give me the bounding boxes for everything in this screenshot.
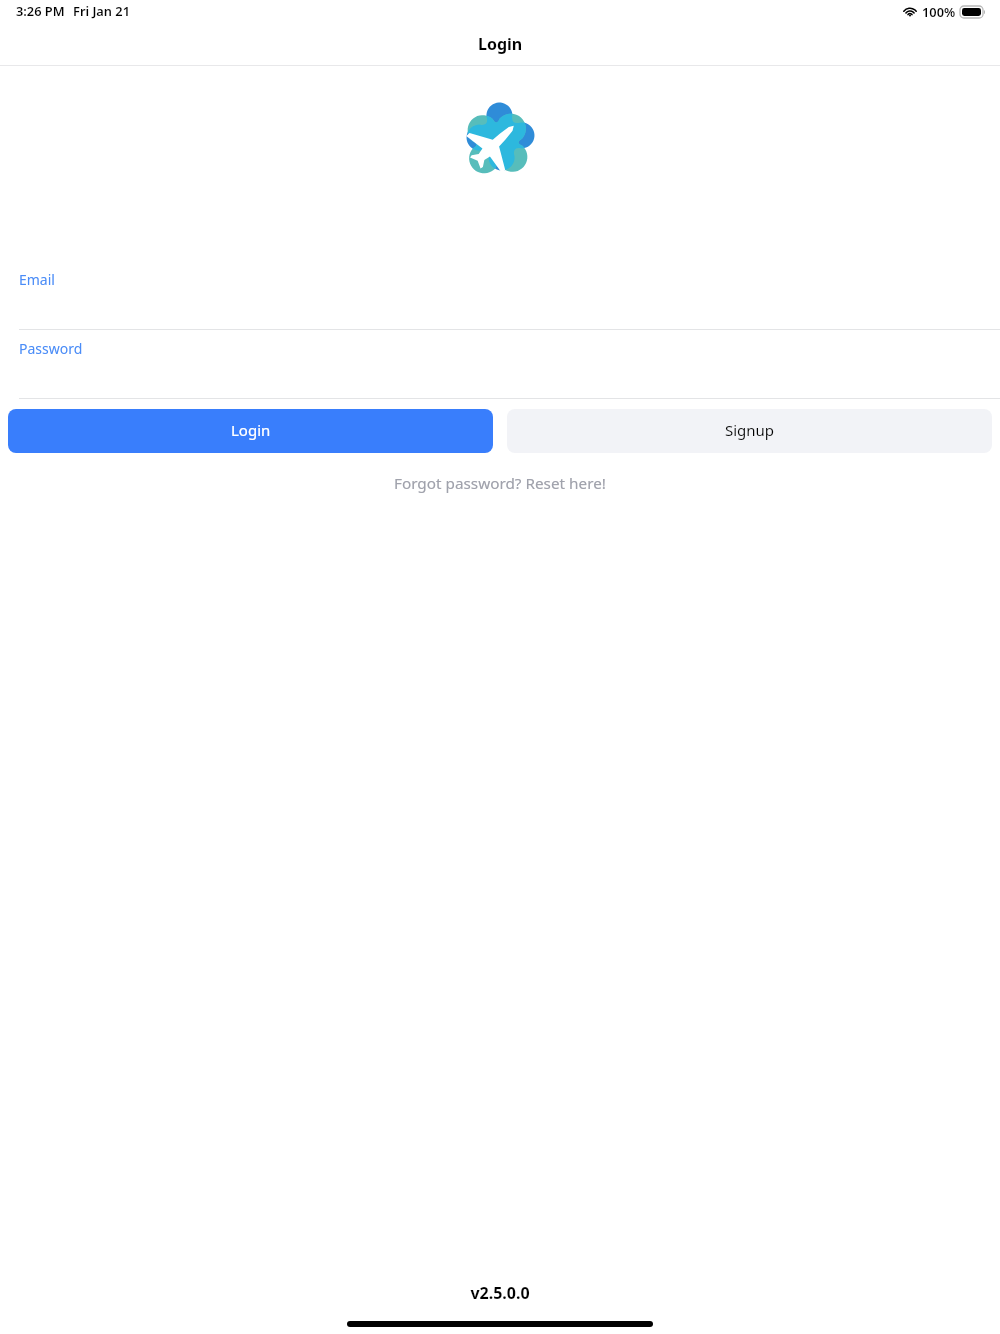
staticText: Fri Jan 21 (73, 2, 130, 19)
other: Wi-Fi connected (903, 6, 917, 17)
staticText: 3:26 PM (16, 2, 65, 19)
button[interactable]: Signup (507, 409, 992, 453)
other: Battery full (960, 6, 985, 18)
staticText: Signup (725, 420, 775, 440)
button[interactable]: Email (0, 261, 1000, 330)
button[interactable]: Forgot password? Reset here! (388, 471, 612, 496)
staticText: Password (19, 339, 83, 358)
staticText: Login (478, 33, 523, 55)
staticText: v2.5.0.0 (0, 1282, 1000, 1304)
staticText: Login (231, 420, 271, 440)
button[interactable]: Password (0, 330, 1000, 399)
other: App logo (464, 103, 537, 176)
staticText: 100% (922, 3, 956, 20)
staticText: Email (19, 270, 55, 289)
button[interactable]: Login (8, 409, 493, 453)
